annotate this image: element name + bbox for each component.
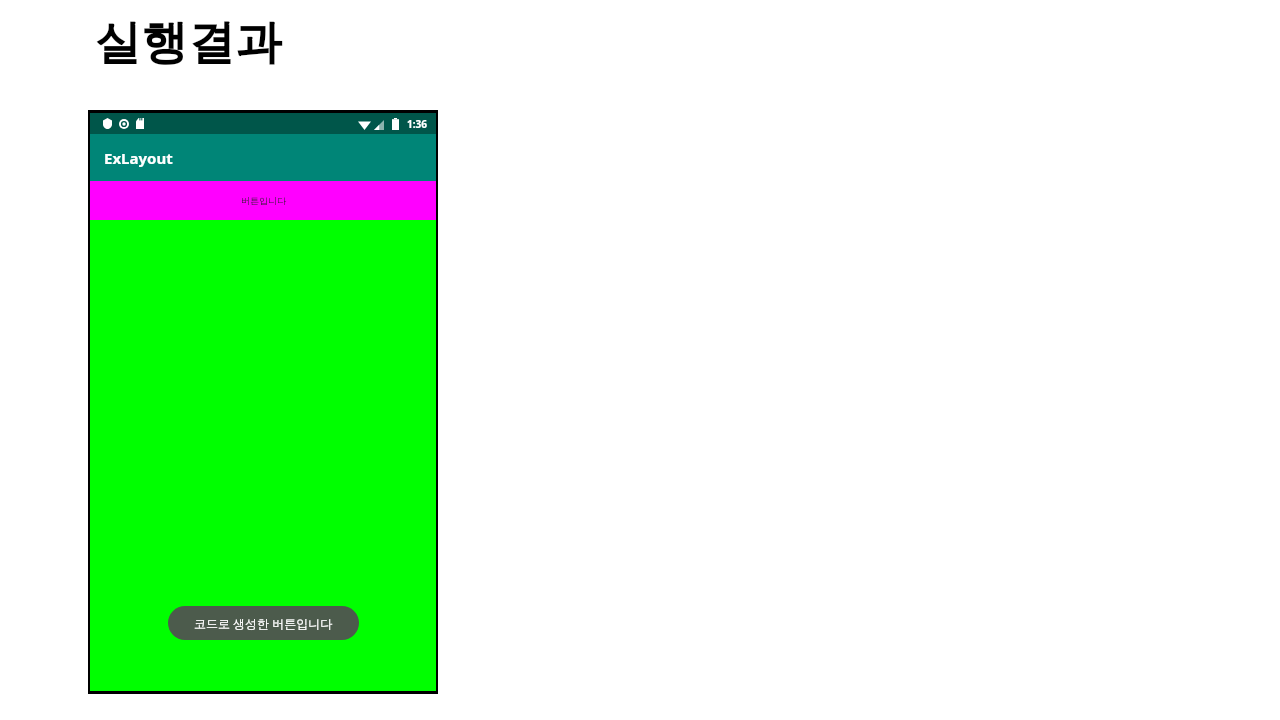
staticText: 코드로 생성한 버튼입니다 [194, 615, 333, 631]
button[interactable]: 코드로 생성한 버튼입니다 [168, 606, 359, 640]
button[interactable]: 버튼입니다 [90, 181, 436, 220]
staticText: 1:36 [407, 117, 427, 131]
staticText: ExLayout [104, 148, 173, 168]
staticText: 실행결과 [94, 14, 282, 72]
staticText: 버튼입니다 [241, 195, 286, 206]
